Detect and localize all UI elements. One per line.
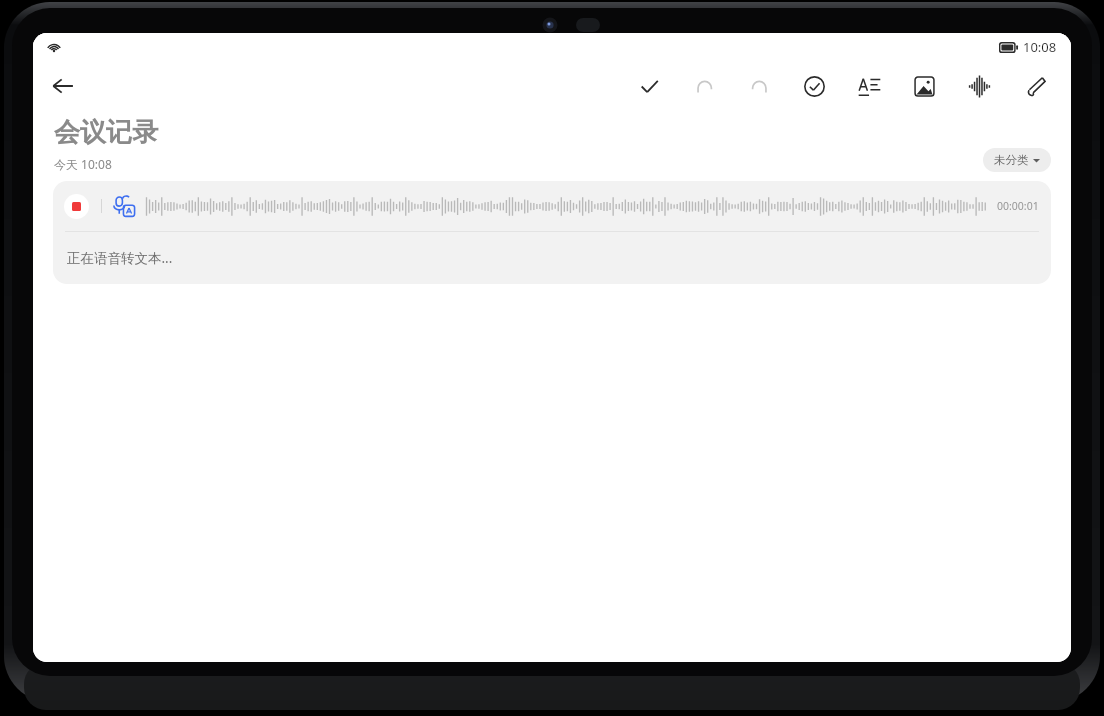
button[interactable]: 语音输入 <box>962 69 996 103</box>
staticText: 未分类 <box>994 153 1029 167</box>
button[interactable]: 停止录音 <box>64 194 89 219</box>
staticText: 会议记录 <box>54 116 158 149</box>
button[interactable]: 未分类 <box>983 148 1051 172</box>
staticText: 00:00:01 <box>997 199 1039 213</box>
button[interactable]: 撤销 <box>687 69 721 103</box>
button[interactable]: 语音转文本 <box>112 194 136 218</box>
button[interactable]: 手写 <box>1017 69 1051 103</box>
button[interactable]: 停止录音 <box>53 181 1051 284</box>
button[interactable]: 待办 <box>797 69 831 103</box>
button[interactable]: 返回 <box>41 64 85 108</box>
staticText: 今天 10:08 <box>54 156 112 172</box>
staticText: 10:08 <box>1023 38 1057 56</box>
button[interactable]: 文字样式 <box>852 69 886 103</box>
button[interactable]: 完成 <box>632 69 666 103</box>
button[interactable]: 重做 <box>742 69 776 103</box>
staticText: 正在语音转文本... <box>67 249 173 267</box>
button[interactable]: 插入图片 <box>907 69 941 103</box>
